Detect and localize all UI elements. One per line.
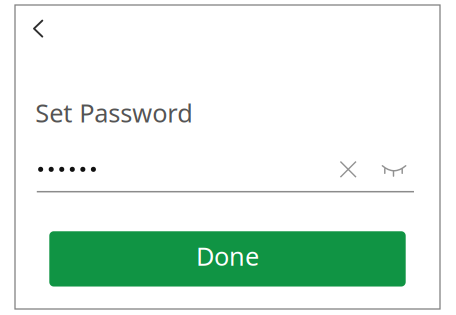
button[interactable]: Back xyxy=(15,5,58,50)
button[interactable]: Show password xyxy=(377,156,411,182)
staticText: Done xyxy=(196,239,259,273)
button[interactable]: Done xyxy=(49,231,406,286)
staticText: Set Password xyxy=(35,96,193,129)
button[interactable]: Clear xyxy=(334,156,362,182)
